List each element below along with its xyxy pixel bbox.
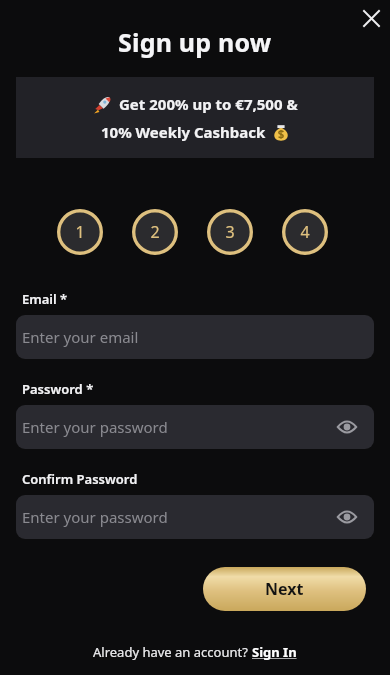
staticText: 3	[225, 221, 235, 243]
staticText: 4	[300, 221, 310, 243]
button[interactable]: Enter your password	[16, 495, 374, 539]
button[interactable]: Enter your password	[16, 405, 374, 449]
staticText: Password *	[22, 380, 94, 398]
button[interactable]: Sign In	[252, 643, 297, 661]
staticText: Next	[265, 578, 304, 600]
button[interactable]: Show password	[334, 414, 360, 440]
button[interactable]: Enter your email	[16, 315, 374, 359]
staticText: 2	[150, 221, 160, 243]
button[interactable]: Close	[353, 0, 389, 36]
staticText: Enter your password	[22, 507, 168, 527]
staticText: Sign In	[252, 643, 297, 661]
button[interactable]: Next	[203, 567, 366, 611]
staticText: Enter your password	[22, 417, 168, 437]
staticText: Already have an account?	[93, 643, 252, 661]
staticText: Enter your email	[22, 327, 139, 347]
staticText: Sign up now	[118, 25, 272, 59]
staticText: Get 200% up to €7,500 &	[119, 94, 298, 114]
staticText: 10% Weekly Cashback	[101, 122, 266, 142]
button[interactable]: 4	[282, 209, 328, 255]
staticText: Email *	[22, 290, 68, 308]
button[interactable]: Show password	[334, 504, 360, 530]
staticText: Confirm Password	[22, 470, 138, 488]
button[interactable]: 1	[57, 209, 103, 255]
button[interactable]: 3	[207, 209, 253, 255]
button[interactable]: 2	[132, 209, 178, 255]
staticText: 1	[75, 221, 85, 243]
